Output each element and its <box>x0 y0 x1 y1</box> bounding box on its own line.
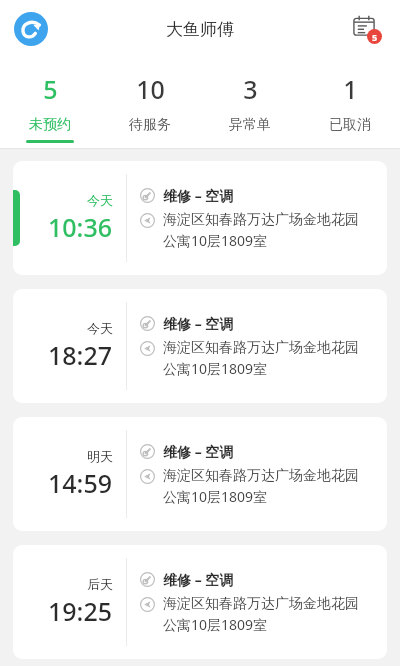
staticText: 大鱼师傅 <box>166 19 234 40</box>
staticText: 海淀区知春路万达广场金地花园 公寓10层1809室 <box>163 595 359 635</box>
staticText: 海淀区知春路万达广场金地花园 公寓10层1809室 <box>163 467 359 507</box>
staticText: 维修 – 空调 <box>163 570 234 589</box>
staticText: 维修 – 空调 <box>163 442 234 461</box>
staticText: 1 <box>343 72 358 106</box>
button[interactable]: 明天 <box>13 417 387 531</box>
button[interactable]: 今天 <box>13 289 387 403</box>
button[interactable]: Logo <box>14 12 48 46</box>
staticText: 18:27 <box>48 338 113 372</box>
staticText: 未预约 <box>29 116 71 134</box>
staticText: 维修 – 空调 <box>163 186 234 205</box>
staticText: 5 <box>372 31 378 43</box>
button[interactable]: 后天 <box>13 545 387 659</box>
staticText: 维修 – 空调 <box>163 314 234 333</box>
staticText: 今天 <box>87 320 113 336</box>
button[interactable]: 1 <box>300 58 400 148</box>
button[interactable]: 5 <box>0 58 100 148</box>
staticText: 10 <box>136 72 165 106</box>
button[interactable]: 3 <box>200 58 300 148</box>
staticText: 后天 <box>87 576 113 592</box>
staticText: 5 <box>43 72 58 106</box>
staticText: 异常单 <box>229 116 271 134</box>
staticText: 明天 <box>87 448 113 464</box>
button[interactable]: Schedule <box>352 12 386 46</box>
staticText: 14:59 <box>48 466 113 500</box>
staticText: 19:25 <box>48 594 113 628</box>
staticText: 待服务 <box>129 116 171 134</box>
button[interactable]: 今天 <box>13 161 387 275</box>
staticText: 海淀区知春路万达广场金地花园 公寓10层1809室 <box>163 339 359 379</box>
staticText: 今天 <box>87 192 113 208</box>
button[interactable]: 10 <box>100 58 200 148</box>
staticText: 已取消 <box>329 116 371 134</box>
staticText: 海淀区知春路万达广场金地花园 公寓10层1809室 <box>163 211 359 251</box>
staticText: 10:36 <box>48 210 113 244</box>
staticText: 3 <box>243 72 258 106</box>
